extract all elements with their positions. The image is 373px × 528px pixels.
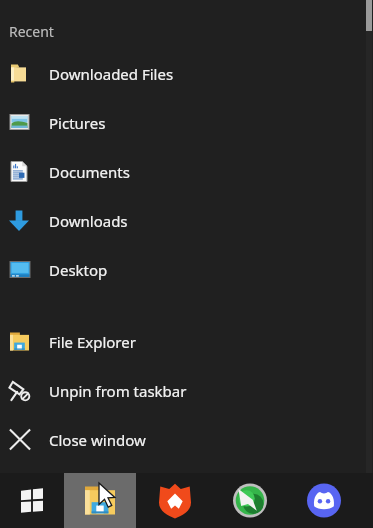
staticText: File Explorer — [49, 332, 136, 352]
button[interactable]: Discord — [288, 473, 360, 528]
button[interactable]: Close window — [0, 415, 373, 464]
staticText: Unpin from taskbar — [49, 381, 187, 401]
button[interactable]: Documents — [0, 147, 373, 196]
button[interactable]: Desktop — [0, 245, 373, 294]
button[interactable]: Downloaded Files — [0, 49, 373, 98]
staticText: Close window — [49, 430, 146, 450]
button[interactable]: Brave Browser — [139, 473, 211, 528]
button[interactable]: File Explorer — [64, 473, 136, 528]
staticText: Downloads — [49, 211, 128, 231]
button[interactable]: Pictures — [0, 98, 373, 147]
staticText: Downloaded Files — [49, 64, 174, 84]
staticText: Desktop — [49, 260, 108, 280]
button[interactable]: Downloads — [0, 196, 373, 245]
button[interactable]: Application — [214, 473, 286, 528]
button[interactable]: Unpin from taskbar — [0, 366, 373, 415]
staticText: Documents — [49, 162, 130, 182]
button[interactable]: Start — [0, 473, 64, 528]
button[interactable]: File Explorer — [0, 317, 373, 366]
staticText: Pictures — [49, 113, 106, 133]
staticText: Recent — [9, 22, 54, 41]
